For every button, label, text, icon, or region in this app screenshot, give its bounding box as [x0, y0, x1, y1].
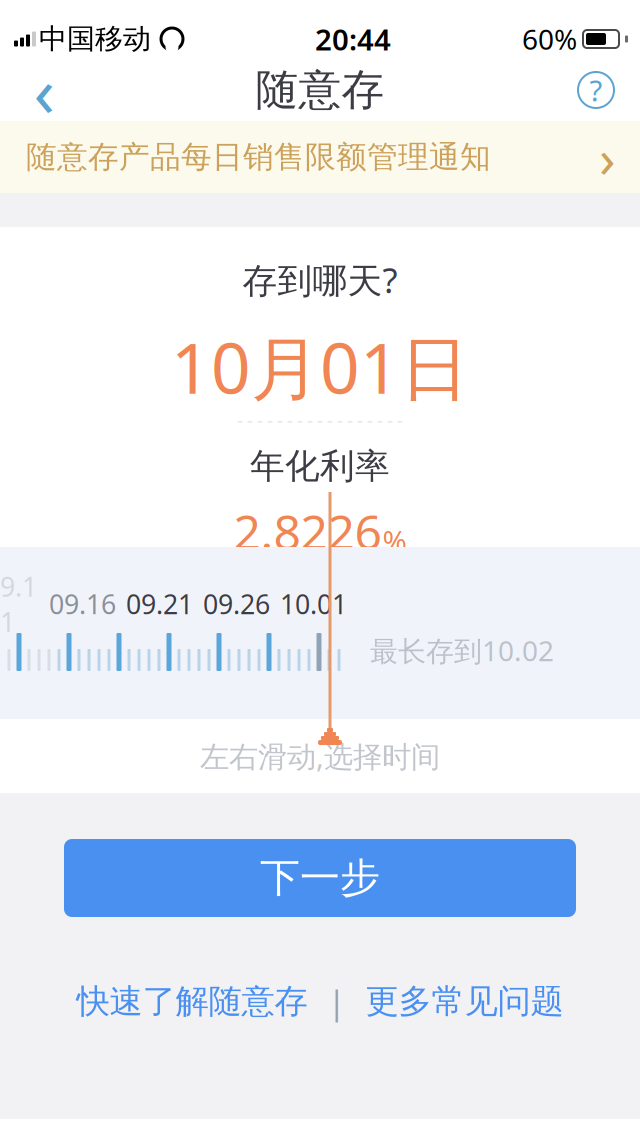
button[interactable]: 随意存产品每日销售限额管理通知 — [0, 121, 640, 193]
staticText: 9.11 — [0, 569, 37, 639]
staticText: 60% — [522, 20, 577, 58]
staticText: 10月01日 — [171, 321, 469, 413]
staticText: 下一步 — [260, 853, 380, 902]
button[interactable]: 下一步 — [64, 839, 576, 917]
staticText: ‹ — [33, 44, 54, 136]
staticText: › — [599, 122, 616, 192]
button[interactable]: 更多常见问题 — [359, 975, 569, 1028]
staticText: 左右滑动,选择时间 — [200, 736, 440, 775]
button[interactable]: 快速了解随意存 — [70, 975, 313, 1028]
staticText: ? — [589, 70, 602, 109]
staticText: 中国移动 — [39, 22, 151, 56]
staticText: 快速了解随意存 — [76, 981, 307, 1022]
staticText: 最长存到10.02 — [370, 632, 554, 669]
button[interactable]: Back — [14, 59, 74, 121]
staticText: | — [327, 979, 345, 1024]
staticText: 09.16 — [49, 586, 116, 622]
staticText: 20:44 — [315, 19, 391, 58]
staticText: 更多常见问题 — [365, 981, 563, 1022]
staticText: 随意存 — [255, 64, 384, 116]
staticText: 09.26 — [203, 586, 270, 622]
button[interactable]: Help — [566, 59, 626, 121]
staticText: 09.21 — [126, 586, 193, 622]
staticText: 年化利率 — [250, 445, 390, 487]
staticText: 2.8226 — [233, 499, 381, 563]
staticText: 存到哪天? — [242, 257, 397, 303]
staticText: % — [382, 521, 406, 560]
staticText: 10.01 — [280, 586, 347, 622]
staticText: 随意存产品每日销售限额管理通知 — [26, 138, 491, 176]
